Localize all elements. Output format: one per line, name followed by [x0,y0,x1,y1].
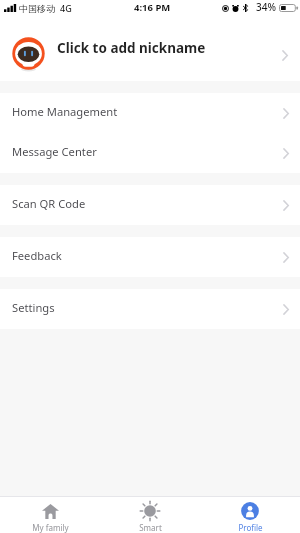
button[interactable]: Profile [200,497,300,533]
button[interactable]: Settings [0,289,300,329]
button[interactable]: Scan QR Code [0,185,300,225]
staticText: Smart [139,522,162,533]
staticText: Message Center [12,144,97,159]
button[interactable]: Feedback [0,237,300,277]
button[interactable]: Message Center [0,133,300,173]
staticText: Home Management [12,104,118,119]
button[interactable]: Home Management [0,93,300,133]
staticText: 中国移动 [19,3,55,14]
staticText: 34% [256,0,276,14]
staticText: Feedback [12,248,62,263]
button[interactable]: Click to add nickname [0,16,300,81]
button[interactable]: My family [0,497,100,533]
staticText: 4:16 PM [134,1,171,14]
staticText: Click to add nickname [57,39,206,57]
staticText: 4G [60,2,72,14]
staticText: My family [32,522,69,533]
staticText: Profile [238,522,263,533]
button[interactable]: Smart [100,497,200,533]
staticText: Scan QR Code [12,196,86,211]
staticText: Settings [12,300,55,315]
